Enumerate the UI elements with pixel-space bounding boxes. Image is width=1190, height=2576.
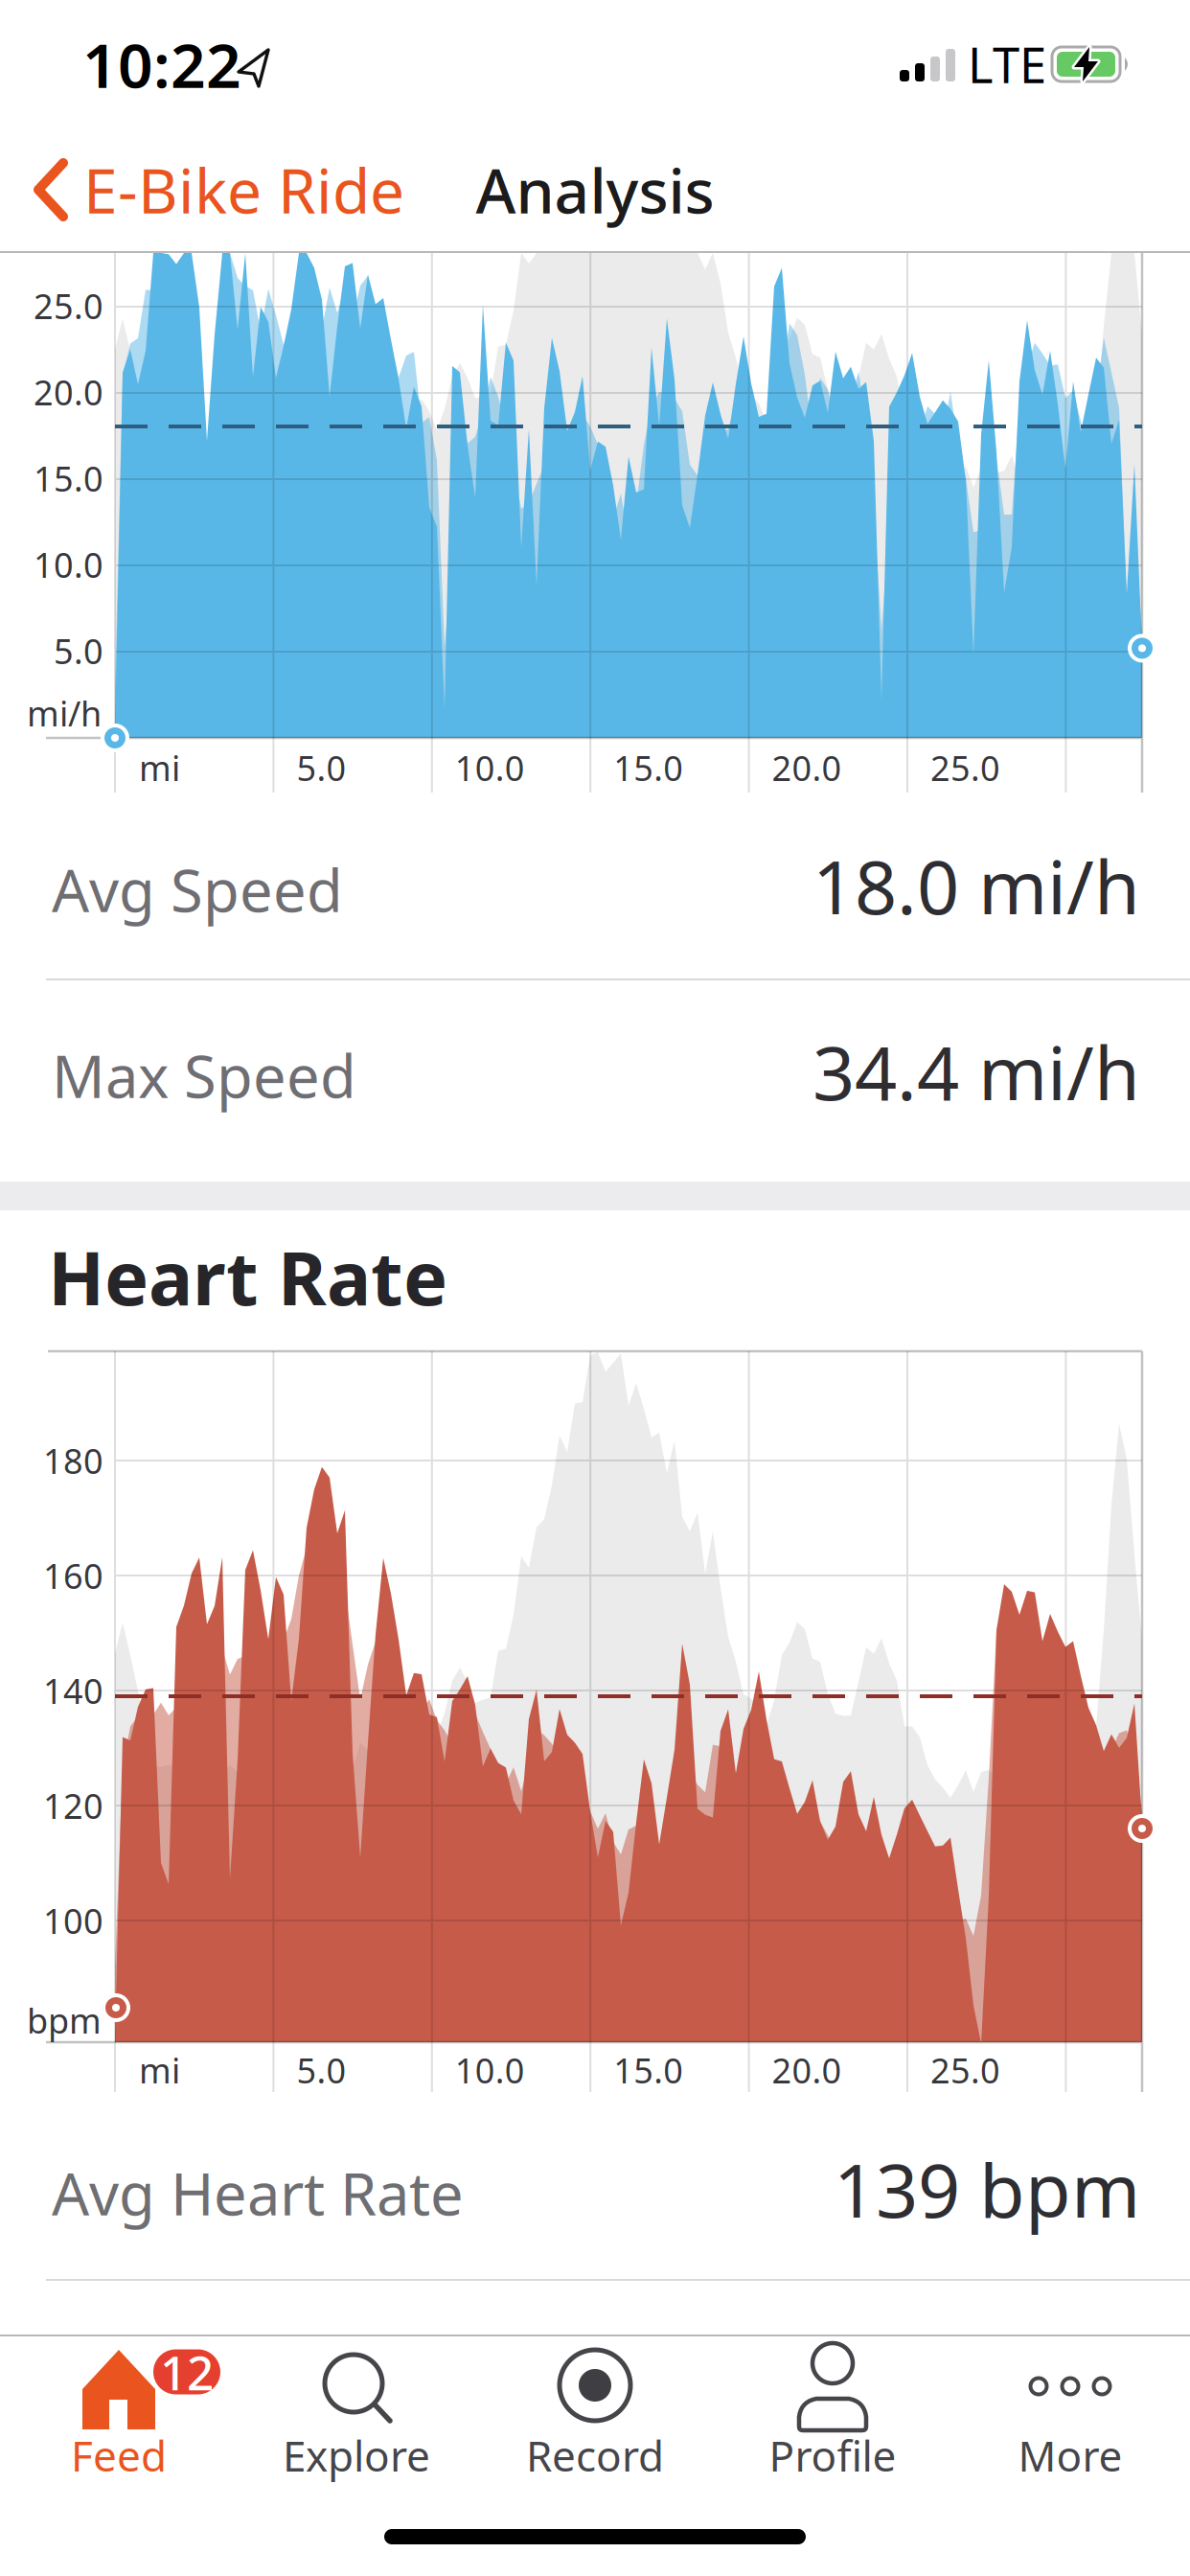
staticText: Record bbox=[526, 2427, 664, 2483]
staticText: 10.0 bbox=[34, 542, 103, 587]
staticText: 5.0 bbox=[296, 745, 346, 791]
staticText: mi/h bbox=[27, 690, 102, 736]
staticText: 120 bbox=[43, 1783, 103, 1828]
button[interactable]: E-Bike Ride bbox=[34, 137, 351, 242]
staticText: 12 bbox=[160, 2340, 214, 2403]
staticText: 10:22 bbox=[82, 23, 241, 105]
staticText: 140 bbox=[43, 1668, 103, 1713]
staticText: Analysis bbox=[476, 149, 714, 230]
staticText: 139 bpm bbox=[834, 2140, 1140, 2238]
button[interactable]: Profile bbox=[718, 2334, 948, 2535]
staticText: 20.0 bbox=[34, 369, 103, 415]
staticText: 15.0 bbox=[613, 2047, 683, 2093]
staticText: 20.0 bbox=[772, 2047, 842, 2093]
staticText: 25.0 bbox=[930, 2047, 1000, 2093]
staticText: 20.0 bbox=[772, 745, 842, 791]
staticText: bpm bbox=[27, 1997, 102, 2043]
staticText: Avg Heart Rate bbox=[52, 2154, 464, 2232]
staticText: LTE bbox=[968, 32, 1046, 97]
staticText: 100 bbox=[43, 1898, 103, 1943]
staticText: 15.0 bbox=[613, 745, 683, 791]
staticText: 34.4 mi/h bbox=[812, 1022, 1140, 1121]
staticText: 18.0 mi/h bbox=[812, 836, 1140, 935]
staticText: 15.0 bbox=[34, 455, 103, 501]
button[interactable]: 12 bbox=[4, 2334, 234, 2535]
button[interactable]: Explore bbox=[241, 2334, 471, 2535]
staticText: 5.0 bbox=[296, 2047, 346, 2093]
staticText: Heart Rate bbox=[48, 1227, 447, 1326]
staticText: 25.0 bbox=[930, 745, 1000, 791]
staticText: E-Bike Ride bbox=[83, 149, 404, 230]
staticText: 160 bbox=[43, 1553, 103, 1598]
staticText: 10.0 bbox=[455, 745, 525, 791]
button[interactable]: More bbox=[955, 2334, 1185, 2535]
staticText: More bbox=[1018, 2427, 1122, 2483]
staticText: Explore bbox=[283, 2427, 430, 2483]
staticText: Profile bbox=[769, 2427, 896, 2483]
staticText: 25.0 bbox=[34, 283, 103, 329]
staticText: Feed bbox=[71, 2427, 167, 2483]
staticText: 5.0 bbox=[54, 628, 103, 674]
staticText: Max Speed bbox=[52, 1036, 356, 1114]
staticText: mi bbox=[139, 2047, 180, 2093]
button[interactable]: Record bbox=[480, 2334, 710, 2535]
staticText: Avg Speed bbox=[52, 850, 343, 928]
staticText: 180 bbox=[43, 1438, 103, 1483]
staticText: 10.0 bbox=[455, 2047, 525, 2093]
staticText: mi bbox=[139, 745, 180, 791]
